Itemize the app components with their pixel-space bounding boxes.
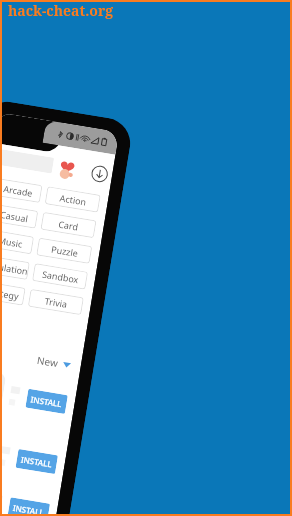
button[interactable]: Music [2, 229, 34, 254]
staticText: Casual [2, 208, 29, 224]
staticText: Simulation [2, 258, 29, 277]
staticText: Sandbox [41, 267, 80, 285]
staticText: Puzzle [50, 243, 79, 259]
staticText: hack-cheat.org [8, 2, 114, 20]
staticText: Card [58, 217, 79, 233]
button[interactable]: Strategy [2, 280, 26, 306]
button[interactable]: INSTALL [25, 389, 68, 414]
button[interactable] [2, 148, 54, 174]
button[interactable]: INSTALL [2, 478, 51, 514]
staticText: INSTALL [20, 453, 53, 469]
staticText: Music [2, 234, 24, 250]
staticText: Arcade [3, 182, 34, 199]
button[interactable]: Action [45, 186, 101, 213]
staticText: INSTALL [30, 393, 63, 409]
button[interactable]: Sandbox [32, 263, 88, 290]
button[interactable]: Card [40, 212, 97, 238]
button[interactable]: Downloads [90, 164, 109, 184]
staticText: INSTALL [12, 502, 45, 514]
staticText: Trivia [44, 294, 69, 310]
button[interactable]: Casual [2, 203, 38, 229]
button[interactable]: INSTALL [7, 497, 50, 514]
staticText: New [36, 353, 59, 370]
button[interactable]: Favorites [56, 158, 78, 179]
staticText: Strategy [2, 284, 20, 302]
button[interactable]: New [36, 353, 72, 372]
button[interactable]: Trivia [28, 289, 84, 315]
staticText: Action [59, 191, 87, 208]
button[interactable]: Simulation [2, 255, 30, 280]
button[interactable]: INSTALL [2, 357, 71, 435]
button[interactable]: INSTALL [2, 417, 61, 495]
button[interactable]: Puzzle [36, 237, 92, 264]
button[interactable]: INSTALL [15, 449, 58, 474]
button[interactable]: Arcade [2, 178, 43, 203]
